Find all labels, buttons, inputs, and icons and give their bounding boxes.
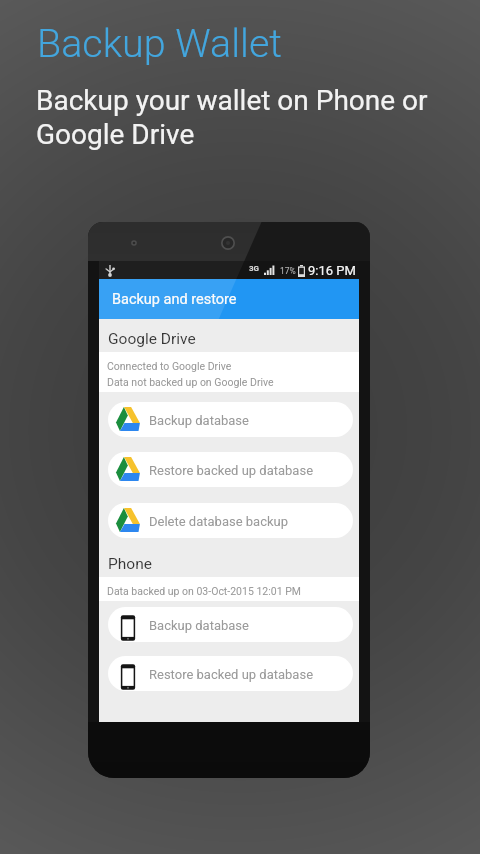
staticText: 9:16 PM [308,263,356,278]
staticText: Google Drive [108,330,196,348]
staticText: 3G [249,264,260,273]
staticText: Delete database backup [149,514,289,529]
staticText: Backup your wallet on Phone or Google Dr… [36,84,428,151]
staticText: Restore backed up database [149,667,314,682]
staticText: Data backed up on 03-Oct-2015 12:01 PM [107,585,301,597]
button[interactable]: Restore backed up database [108,656,353,691]
staticText: Backup database [149,618,249,633]
button[interactable]: Delete database backup [108,503,353,538]
staticText: Restore backed up database [149,463,314,478]
staticText: Backup database [149,413,249,428]
staticText: Backup and restore [112,291,237,308]
button[interactable]: Backup database [108,607,353,642]
staticText: Connected to Google Drive Data not backe… [107,360,274,388]
staticText: 17% [280,266,296,276]
button[interactable]: Backup database [108,402,353,437]
staticText: Backup Wallet [37,20,283,66]
button[interactable]: Backup and restore [99,279,359,319]
button[interactable]: Restore backed up database [108,452,353,487]
staticText: Phone [108,555,152,573]
